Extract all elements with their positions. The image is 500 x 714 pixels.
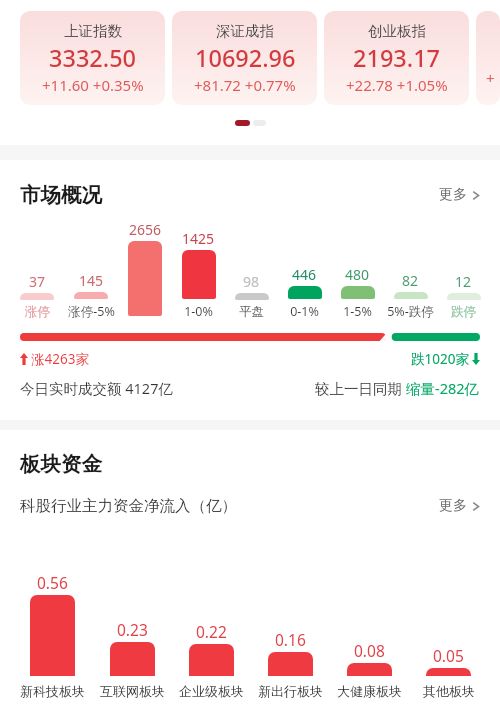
staticText: 3332.50 [49, 42, 137, 74]
staticText: 平盘 [239, 304, 264, 320]
staticText: 2656 [129, 220, 162, 239]
other: 更多 [472, 189, 480, 202]
staticText: 新出行板块 [258, 683, 323, 699]
staticText: 480 [345, 265, 370, 284]
staticText: +81.72 +0.77% [194, 75, 296, 95]
staticText: 145 [79, 271, 104, 290]
staticText: 0.23 [117, 619, 148, 640]
staticText: 0.22 [196, 621, 227, 642]
staticText: 今日实时成交额 4127亿 [20, 378, 173, 398]
staticText: 缩量-282亿 [406, 378, 480, 398]
staticText: 1425 [182, 229, 215, 248]
button[interactable]: 创业板指 [324, 11, 469, 105]
staticText: 1-0% [184, 303, 213, 320]
staticText: 0.08 [354, 640, 385, 661]
staticText: 0-1% [290, 303, 319, 320]
staticText: 深证成指 [216, 22, 274, 40]
other: 更多 [472, 500, 480, 513]
staticText: 5%-跌停 [387, 303, 434, 320]
staticText: 科股行业主力资金净流入（亿） [20, 496, 237, 516]
staticText: 0.16 [275, 629, 306, 650]
staticText: 12 [455, 272, 472, 291]
staticText: 较上一日同期 [315, 378, 406, 398]
staticText: 企业级板块 [179, 683, 244, 699]
staticText: 涨4263家 [31, 350, 89, 368]
staticText: 37 [29, 272, 46, 291]
button[interactable]: 上证指数 [20, 11, 165, 105]
staticText: 10692.96 [195, 42, 296, 74]
staticText: 其他板块 [423, 683, 475, 699]
staticText: 大健康板块 [337, 683, 402, 699]
staticText: 涨停-5% [68, 303, 115, 320]
button[interactable]: 更多 [439, 186, 480, 204]
staticText: 跌1020家 [411, 350, 469, 368]
staticText: 446 [292, 265, 317, 284]
staticText: 创业板指 [368, 22, 426, 40]
staticText: 跌停 [451, 304, 476, 320]
button[interactable]: 科股行业主力资金净流入（亿） [20, 496, 480, 516]
staticText: 更多 [439, 186, 467, 204]
staticText: 98 [243, 272, 260, 291]
staticText: 新科技板块 [20, 683, 85, 699]
staticText: +11.60 +0.35% [42, 75, 144, 95]
staticText: 2193.17 [353, 42, 441, 74]
staticText: 82 [402, 271, 419, 290]
staticText: 更多 [439, 497, 467, 515]
staticText: 0.56 [37, 572, 68, 593]
button[interactable]: 深证成指 [172, 11, 317, 105]
staticText: 涨停 [25, 304, 50, 320]
staticText: 0.05 [433, 645, 464, 666]
staticText: 上证指数 [64, 22, 122, 40]
staticText: 市场概况 [20, 182, 102, 208]
staticText: 互联网板块 [100, 683, 165, 699]
staticText: 1-5% [343, 303, 372, 320]
staticText: 板块资金 [20, 451, 102, 477]
staticText: +22.78 +1.05% [346, 75, 448, 95]
button[interactable]: + [476, 11, 500, 105]
staticText: + [486, 68, 495, 88]
